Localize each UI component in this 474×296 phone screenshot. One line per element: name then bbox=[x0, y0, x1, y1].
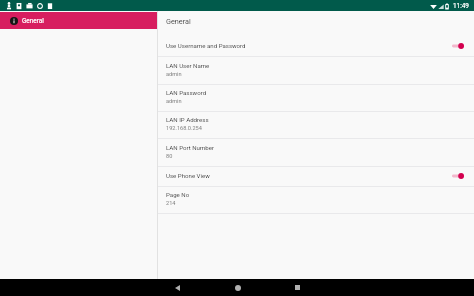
button[interactable]: Use Username and Password bbox=[158, 37, 474, 56]
staticText: General bbox=[22, 17, 44, 25]
staticText: 80 bbox=[166, 153, 173, 160]
staticText: General bbox=[166, 17, 191, 26]
button[interactable]: Back bbox=[169, 279, 186, 296]
staticText: Use Phone View bbox=[166, 172, 210, 179]
button[interactable]: Use Phone View bbox=[158, 167, 474, 186]
staticText: admin bbox=[166, 98, 182, 105]
staticText: Page No bbox=[166, 191, 190, 198]
button[interactable]: Recent apps bbox=[289, 279, 306, 296]
staticText: LAN Password bbox=[166, 89, 207, 96]
button[interactable]: General bbox=[0, 12, 157, 29]
button[interactable]: Page No bbox=[158, 187, 474, 213]
staticText: 214 bbox=[166, 200, 176, 207]
staticText: LAN Port Number bbox=[166, 144, 214, 151]
button[interactable]: Home bbox=[229, 279, 246, 296]
button[interactable]: LAN IP Address bbox=[158, 112, 474, 138]
staticText: LAN IP Address bbox=[166, 116, 209, 123]
staticText: 192.168.0.254 bbox=[166, 125, 202, 132]
button[interactable]: LAN Password bbox=[158, 85, 474, 111]
staticText: admin bbox=[166, 71, 182, 78]
button[interactable]: LAN User Name bbox=[158, 57, 474, 84]
staticText: LAN User Name bbox=[166, 62, 210, 69]
staticText: Use Username and Password bbox=[166, 42, 246, 49]
staticText: 11:49 bbox=[453, 2, 469, 10]
button[interactable]: LAN Port Number bbox=[158, 139, 474, 166]
